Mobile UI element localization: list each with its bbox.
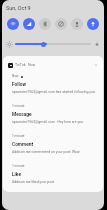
button[interactable]: 1 minute [3,134,103,164]
staticText: Follow [12,82,27,88]
button[interactable]: Now [3,74,103,104]
button[interactable]: 1 minute [3,104,103,134]
staticText: 1 minute [12,164,25,168]
staticText: spacester7563@gmail.com has started foll… [12,90,95,94]
button[interactable]: Bluetooth [39,18,51,30]
button[interactable]: Screen cast [87,18,99,30]
staticText: Addison rae commented on your post: Wow [12,150,80,154]
button[interactable]: Wi-Fi [7,18,19,30]
staticText: Comment [12,142,34,148]
button[interactable]: Flashlight [71,18,83,30]
staticText: Now [12,74,19,78]
button[interactable]: Expand [94,63,98,67]
staticText: Addison rae liked your post [12,180,55,184]
button[interactable]: 1 minute [3,164,103,192]
staticText: 1 minute [12,134,25,138]
staticText: spacester7563@gmail.com : Hey how are yo… [12,120,84,124]
staticText: TicTok · Now [15,63,36,67]
button[interactable]: Mobile data [23,18,35,30]
staticText: Like [12,172,21,178]
staticText: Sun, Oct 9 [6,5,31,11]
staticText: 1 minute [12,104,25,108]
staticText: Message [12,112,32,118]
button[interactable]: Do not disturb [55,18,67,30]
